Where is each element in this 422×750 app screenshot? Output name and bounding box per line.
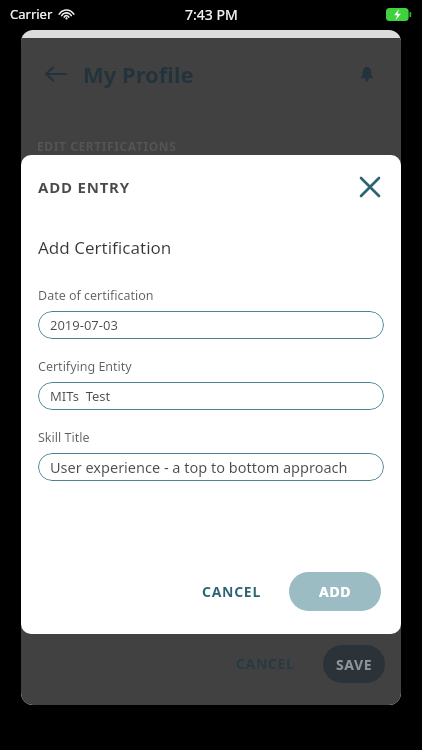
staticText: Certifying Entity	[38, 358, 132, 375]
staticText: ADD	[319, 582, 352, 601]
button[interactable]: SAVE	[323, 645, 385, 683]
staticText: MITs Test	[50, 387, 111, 405]
staticText: My Profile	[83, 59, 194, 89]
button[interactable]: Close	[349, 166, 391, 208]
button[interactable]: ADD	[289, 572, 381, 611]
button[interactable]: 2019-07-03	[38, 311, 384, 339]
staticText: Skill Title	[38, 429, 90, 446]
staticText: 2019-07-03	[50, 316, 118, 334]
staticText: Carrier	[10, 5, 53, 23]
staticText: 7:43 PM	[185, 5, 238, 24]
button[interactable]: Back	[33, 52, 77, 96]
button[interactable]: CANCEL	[222, 644, 309, 683]
button[interactable]: Notifications	[345, 52, 389, 96]
staticText: SAVE	[336, 655, 373, 674]
staticText: EDIT CERTIFICATIONS	[37, 138, 177, 154]
staticText: User experience - a top to bottom approa…	[50, 457, 348, 477]
staticText: Date of certification	[38, 287, 154, 304]
button[interactable]: MITs Test	[38, 382, 384, 410]
staticText: CANCEL	[236, 654, 295, 673]
staticText: Add Certification	[38, 236, 172, 259]
staticText: CANCEL	[202, 582, 261, 601]
button[interactable]: User experience - a top to bottom approa…	[38, 453, 384, 481]
button[interactable]: CANCEL	[188, 572, 275, 611]
staticText: ADD ENTRY	[38, 177, 130, 197]
